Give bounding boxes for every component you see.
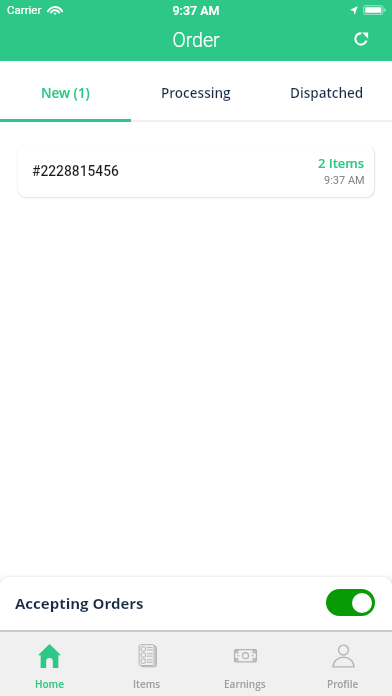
staticText: Earnings [224, 677, 266, 691]
staticText: Profile [327, 677, 359, 691]
button[interactable]: Profile [294, 630, 392, 696]
staticText: 9:37 AM [324, 174, 365, 187]
staticText: Dispatched [290, 84, 364, 102]
staticText: 2 Items [318, 154, 365, 172]
button[interactable]: Accepting orders toggle [326, 589, 375, 616]
staticText: Home [35, 677, 64, 691]
button[interactable]: Accepting Orders [0, 577, 392, 630]
staticText: 9:37 AM [0, 3, 392, 18]
staticText: Accepting Orders [15, 593, 144, 613]
button[interactable]: Processing [130, 61, 261, 122]
staticText: New (1) [41, 84, 90, 102]
button[interactable]: Dispatched [261, 61, 392, 122]
staticText: #2228815456 [32, 163, 119, 179]
staticText: Carrier [7, 3, 42, 16]
button[interactable]: Items [98, 630, 196, 696]
button[interactable]: #2228815456 [18, 145, 374, 197]
button[interactable]: New (1) [0, 61, 130, 122]
button[interactable]: Refresh [346, 24, 376, 54]
button[interactable]: Home [0, 630, 98, 696]
staticText: Items [133, 677, 161, 691]
staticText: Processing [161, 84, 231, 102]
button[interactable]: Earnings [196, 630, 294, 696]
staticText: Order [0, 29, 392, 52]
